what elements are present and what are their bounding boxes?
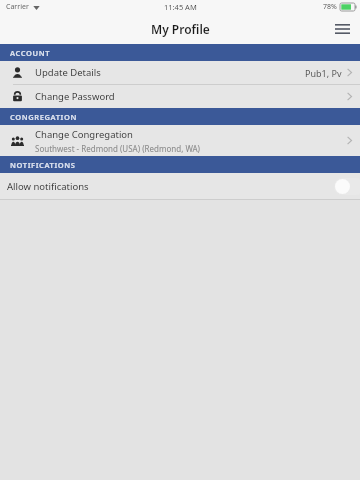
button[interactable]: Change Password — [0, 85, 360, 108]
button[interactable]: Allow notifications — [0, 173, 360, 199]
staticText: Carrier — [6, 2, 29, 12]
staticText: Change Password — [35, 90, 115, 103]
staticText: Southwest - Redmond (USA) (Redmond, WA) — [35, 143, 201, 154]
staticText: ACCOUNT — [10, 48, 51, 58]
staticText: Pub1, Pv — [305, 67, 342, 79]
staticText: Update Details — [35, 66, 101, 79]
staticText: 11:45 AM — [164, 2, 197, 12]
button[interactable]: Update Details — [0, 61, 360, 84]
button[interactable]: Menu — [328, 15, 356, 43]
staticText: NOTIFICATIONS — [10, 160, 76, 170]
staticText: 78% — [323, 2, 337, 12]
staticText: CONGREGATION — [10, 112, 77, 122]
staticText: My Profile — [151, 21, 210, 37]
staticText: Change Congregation — [35, 128, 133, 141]
staticText: Allow notifications — [7, 180, 326, 193]
other: Allow notifications toggle — [334, 178, 360, 195]
button[interactable]: Change Congregation — [0, 125, 360, 156]
